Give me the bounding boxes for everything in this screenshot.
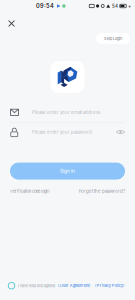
staticText: Verification code login bbox=[10, 189, 49, 194]
button[interactable]: Skip Login bbox=[96, 33, 130, 44]
staticText: Sign in bbox=[60, 168, 75, 174]
button[interactable]: Close bbox=[2, 14, 21, 33]
button[interactable]: Verification code login bbox=[10, 189, 49, 194]
button[interactable]: Forget the password? bbox=[79, 189, 125, 194]
staticText: Please enter your email address bbox=[32, 110, 100, 115]
button[interactable]: Show password bbox=[116, 128, 125, 136]
staticText: Please enter your password bbox=[32, 129, 92, 135]
button[interactable]: Sign in bbox=[10, 163, 125, 180]
staticText: + bbox=[128, 3, 131, 9]
staticText: I have read and agreed bbox=[18, 283, 56, 288]
staticText: Forget the password? bbox=[79, 189, 125, 194]
staticText: 《Privacy Policy》 bbox=[93, 283, 127, 288]
staticText: 《User Agreement》 bbox=[56, 283, 93, 288]
staticText: Skip Login bbox=[104, 36, 122, 41]
button[interactable]: 《User Agreement》 bbox=[56, 283, 93, 288]
button[interactable]: Agree to terms bbox=[8, 282, 15, 289]
staticText: 09:54 bbox=[36, 3, 54, 9]
staticText: 54 bbox=[112, 3, 118, 9]
button[interactable]: 《Privacy Policy》 bbox=[93, 283, 127, 288]
